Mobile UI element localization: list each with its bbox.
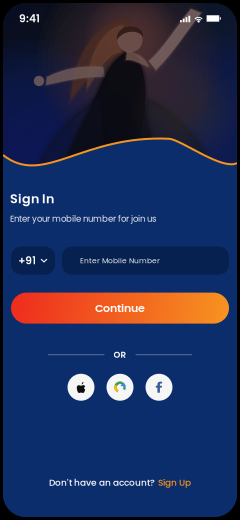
staticText: Enter Mobile Number bbox=[80, 255, 160, 266]
staticText: 9:41 bbox=[19, 11, 40, 26]
staticText: Sign In bbox=[10, 190, 54, 208]
button[interactable]: Sign in with Google bbox=[106, 374, 133, 401]
staticText: Enter your mobile number for join us bbox=[10, 213, 156, 225]
staticText: OR bbox=[113, 349, 126, 361]
button[interactable]: Continue bbox=[11, 293, 229, 324]
staticText: +91 bbox=[18, 253, 36, 268]
staticText: Sign Up bbox=[158, 476, 191, 489]
button[interactable]: Sign in with Facebook bbox=[145, 374, 172, 401]
button[interactable]: Enter Mobile Number bbox=[62, 247, 229, 275]
staticText: Don't have an account? bbox=[49, 476, 155, 489]
button[interactable]: +91 bbox=[11, 247, 55, 275]
button[interactable]: Sign in with Apple bbox=[67, 374, 94, 401]
button[interactable]: Don't have an account? bbox=[49, 476, 191, 489]
staticText: Continue bbox=[95, 300, 145, 316]
